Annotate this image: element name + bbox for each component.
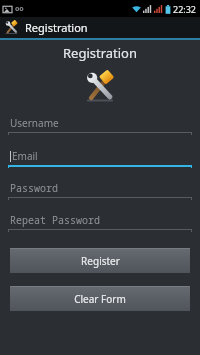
staticText: Email: [12, 149, 38, 163]
button[interactable]: Clear Form: [10, 286, 190, 311]
staticText: Password: [10, 181, 58, 195]
button[interactable]: Password: [0, 179, 200, 200]
button[interactable]: Repeat Password: [0, 211, 200, 232]
staticText: oo: [15, 4, 24, 14]
button[interactable]: Email: [0, 147, 200, 168]
staticText: Clear Form: [74, 292, 126, 306]
staticText: 22:32: [173, 3, 197, 15]
button[interactable]: Registration: [0, 17, 200, 38]
staticText: Registration: [25, 20, 88, 35]
staticText: Register: [81, 254, 120, 268]
button[interactable]: Username: [0, 114, 200, 135]
staticText: Repeat Password: [10, 213, 100, 227]
staticText: Username: [10, 116, 59, 130]
other: App logo: tools: [0, 70, 200, 104]
button[interactable]: Register: [10, 248, 190, 273]
staticText: Registration: [0, 44, 200, 62]
